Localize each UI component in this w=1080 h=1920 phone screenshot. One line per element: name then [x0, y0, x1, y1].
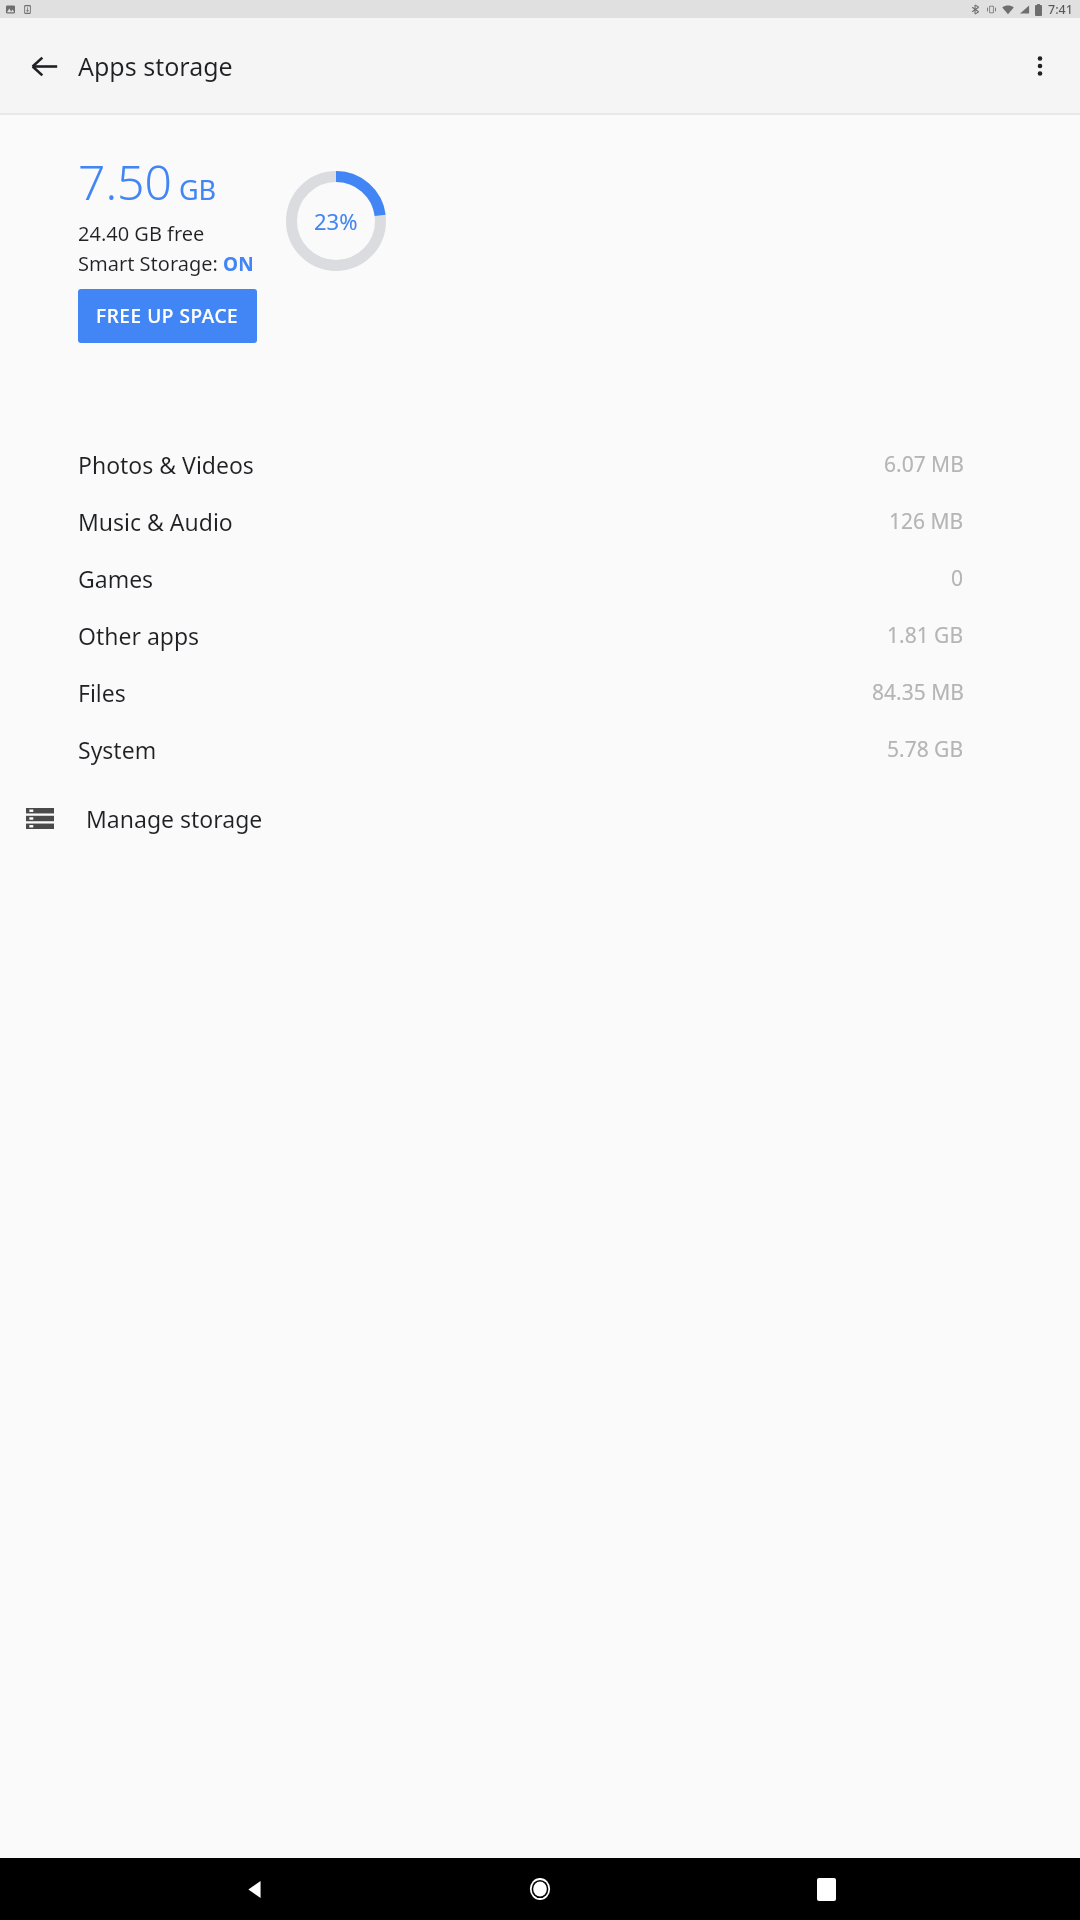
- staticText: Apps storage: [78, 49, 233, 83]
- button[interactable]: Recent apps: [795, 1858, 857, 1920]
- staticText: 24.40 GB free: [78, 220, 205, 247]
- button[interactable]: Photos & Videos: [0, 436, 1080, 493]
- staticText: FREE UP SPACE: [96, 303, 239, 329]
- staticText: Games: [78, 563, 154, 594]
- staticText: 0: [951, 564, 964, 593]
- button[interactable]: Home: [509, 1858, 571, 1920]
- staticText: System: [78, 734, 157, 765]
- staticText: 6.07 MB: [884, 450, 964, 479]
- staticText: 7.50 GB: [78, 149, 217, 214]
- button[interactable]: Back: [224, 1858, 286, 1920]
- button[interactable]: Other apps: [0, 607, 1080, 664]
- staticText: 84.35 MB: [872, 678, 964, 707]
- button[interactable]: More options: [1012, 38, 1068, 94]
- button[interactable]: Back: [14, 36, 74, 96]
- button[interactable]: FREE UP SPACE: [78, 289, 257, 343]
- staticText: 5.78 GB: [887, 735, 964, 764]
- staticText: Manage storage: [86, 803, 263, 834]
- staticText: Photos & Videos: [78, 449, 254, 480]
- staticText: 1.81 GB: [887, 621, 964, 650]
- button[interactable]: Manage storage: [0, 778, 1080, 858]
- staticText: 126 MB: [889, 507, 964, 536]
- button[interactable]: Files: [0, 664, 1080, 721]
- staticText: Other apps: [78, 620, 200, 651]
- staticText: 7:41: [1048, 1, 1073, 18]
- button[interactable]: System: [0, 721, 1080, 778]
- staticText: Smart Storage: ON: [78, 250, 254, 277]
- staticText: 23%: [314, 206, 358, 236]
- button[interactable]: Music & Audio: [0, 493, 1080, 550]
- staticText: Files: [78, 677, 126, 708]
- button[interactable]: Games: [0, 550, 1080, 607]
- staticText: Music & Audio: [78, 506, 233, 537]
